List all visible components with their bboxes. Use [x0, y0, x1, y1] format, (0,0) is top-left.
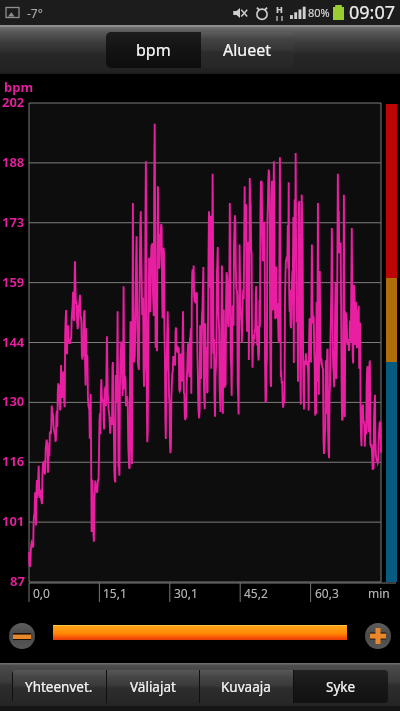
staticText: 0,0	[33, 585, 50, 601]
staticText: 101	[2, 512, 25, 530]
staticText: 60,3	[315, 585, 339, 601]
staticText: 173	[2, 213, 25, 231]
button[interactable]: Kuvaaja	[199, 670, 293, 703]
staticText: 188	[2, 153, 25, 171]
button[interactable]: bpm	[106, 32, 201, 68]
staticText: 159	[2, 273, 25, 291]
staticText: 130	[2, 392, 25, 410]
staticText: Kuvaaja	[221, 678, 271, 696]
button[interactable]: Zoom out	[9, 623, 35, 649]
staticText: Alueet	[223, 39, 272, 61]
button[interactable]: Alueet	[201, 32, 294, 68]
staticText: 15,1	[103, 585, 127, 601]
staticText: 09:07	[349, 0, 396, 25]
staticText: 87	[10, 572, 25, 590]
staticText: Yhteenvet.	[25, 678, 93, 696]
staticText: H	[276, 3, 283, 15]
staticText: bpm	[136, 39, 171, 61]
staticText: Syke	[326, 678, 356, 696]
staticText: Väliajat	[130, 678, 176, 696]
staticText: 144	[2, 333, 25, 351]
staticText: min	[368, 585, 390, 601]
staticText: bpm	[4, 78, 34, 96]
staticText: 116	[2, 452, 25, 470]
staticText: 30,1	[174, 585, 198, 601]
staticText: 80%	[308, 5, 330, 20]
staticText: 202	[2, 93, 25, 111]
button[interactable]: Väliajat	[106, 670, 199, 703]
staticText: 45,2	[244, 585, 268, 601]
staticText: -7°	[27, 5, 43, 21]
button[interactable]: Yhteenvet.	[12, 670, 106, 703]
button[interactable]: Syke	[293, 670, 388, 703]
button[interactable]: Zoom in	[365, 623, 391, 649]
button[interactable]	[53, 625, 347, 640]
